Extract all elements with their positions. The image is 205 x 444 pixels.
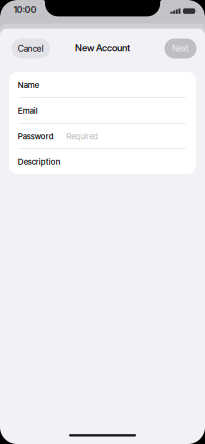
staticText: Password <box>18 131 54 141</box>
button[interactable]: Cancel <box>11 38 50 58</box>
button[interactable]: Name <box>18 72 195 98</box>
button[interactable]: Password <box>18 124 195 149</box>
staticText: Required <box>66 131 98 141</box>
staticText: Next <box>172 43 189 54</box>
staticText: Cancel <box>18 43 44 54</box>
staticText: 10:00 <box>14 5 37 15</box>
staticText: Description <box>18 157 61 167</box>
button[interactable]: Description <box>18 149 195 175</box>
button[interactable]: Email <box>18 98 195 123</box>
staticText: Email <box>18 106 38 116</box>
staticText: Name <box>18 80 39 90</box>
button[interactable]: Next <box>164 38 196 58</box>
staticText: New Account <box>75 42 130 54</box>
